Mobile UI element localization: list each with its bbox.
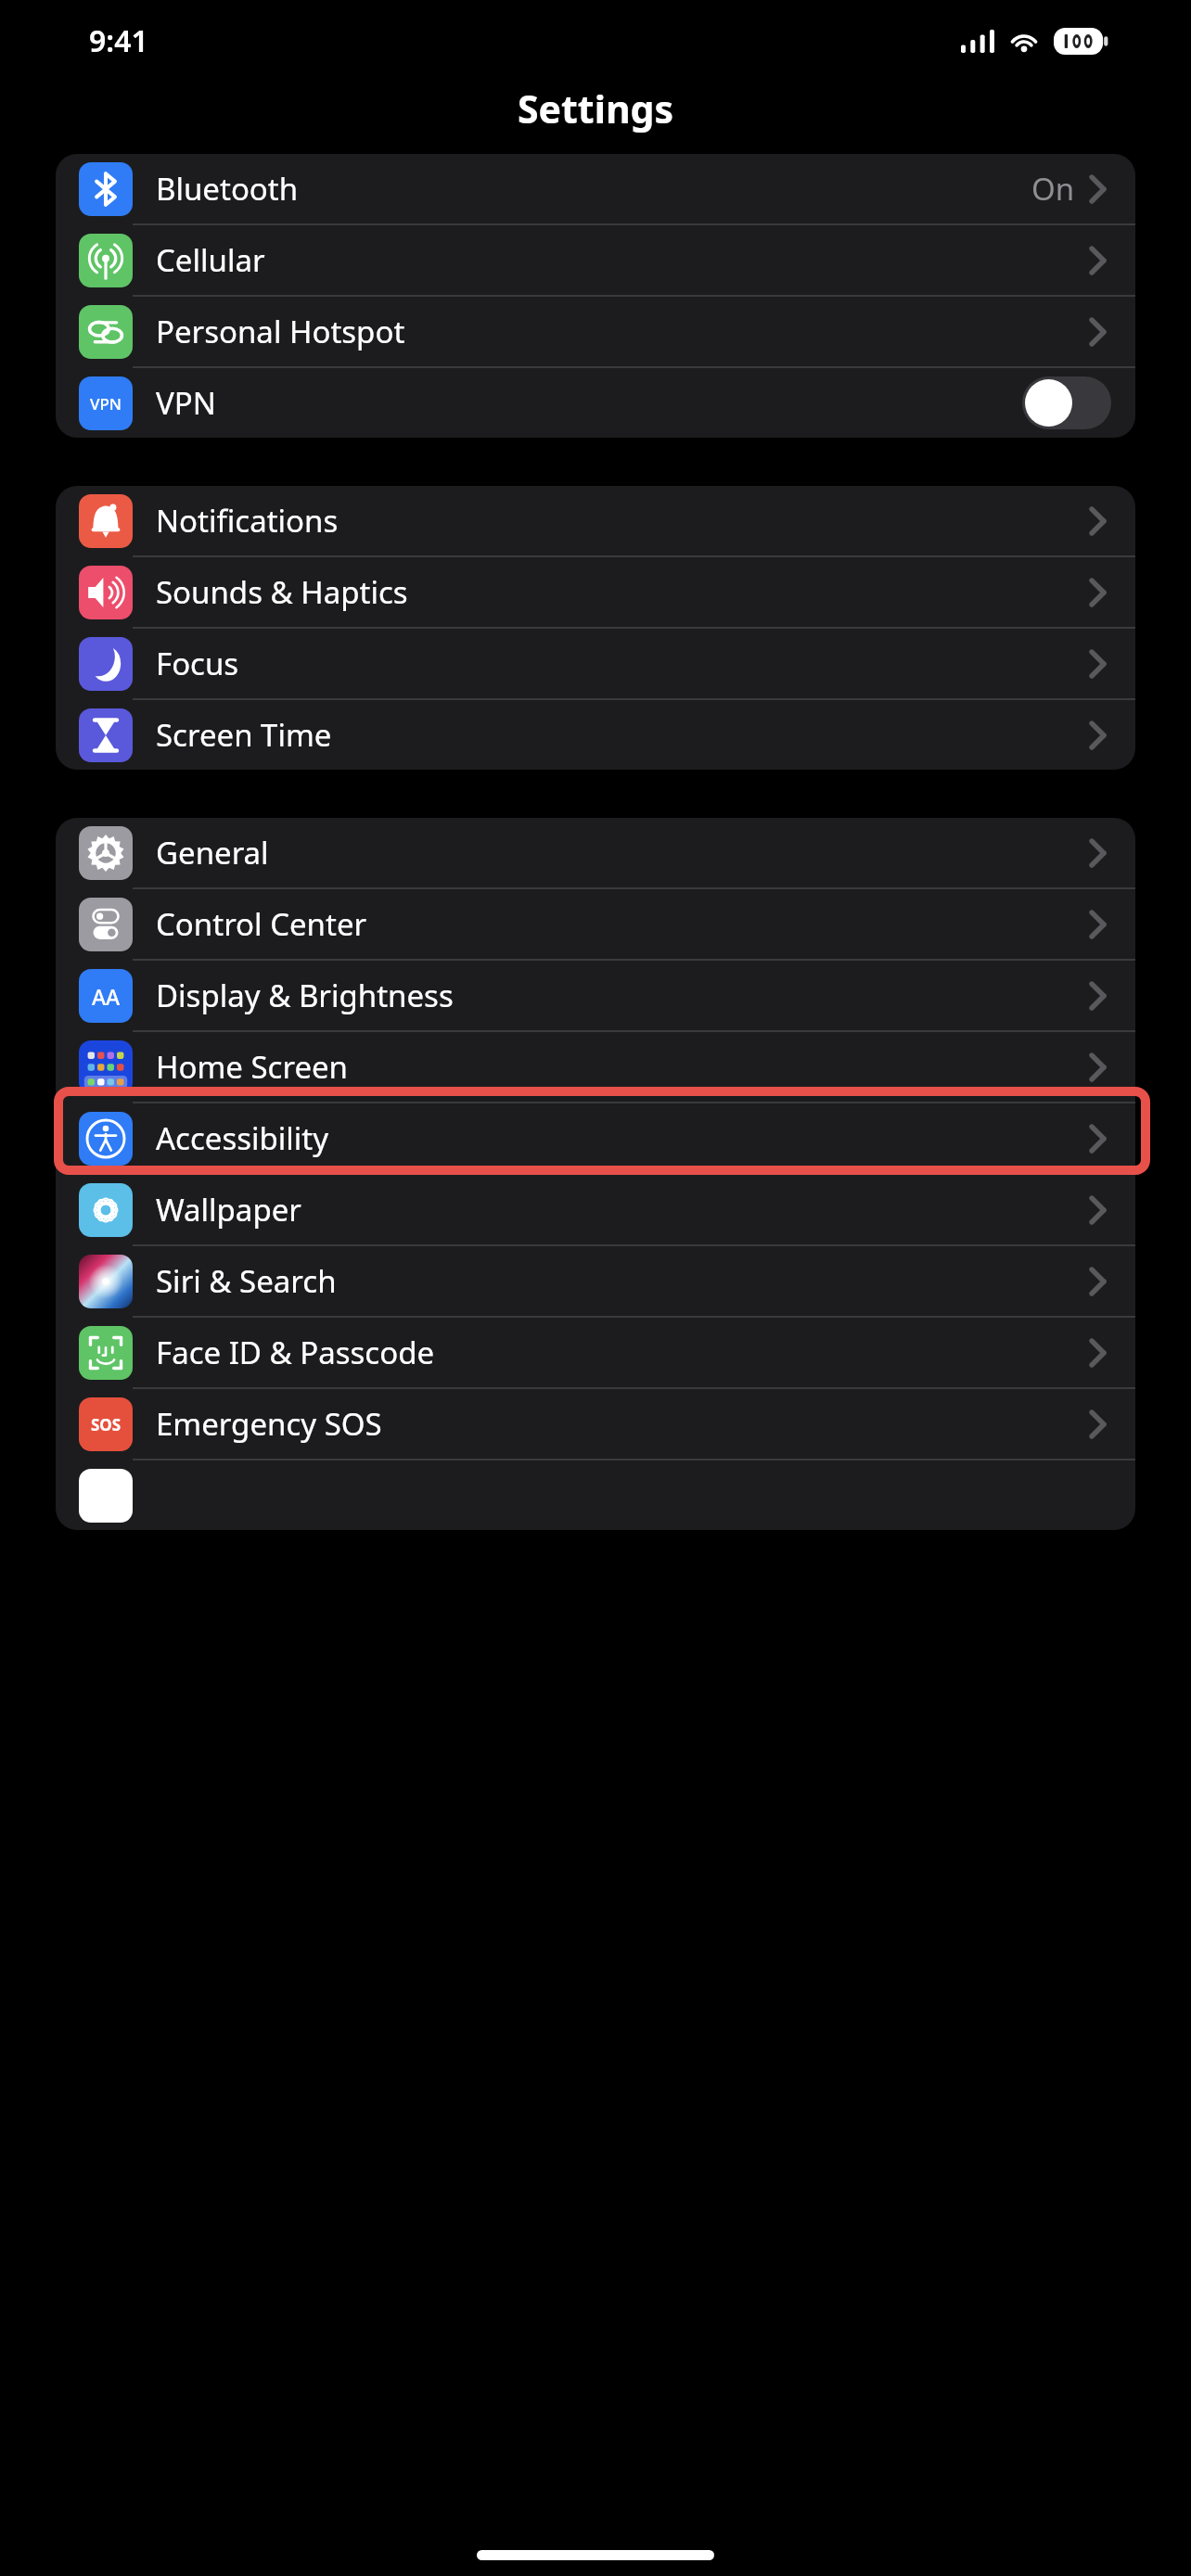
staticText: AA: [92, 982, 121, 1011]
button[interactable]: Accessibility: [56, 1103, 1135, 1173]
button[interactable]: General: [56, 818, 1135, 887]
staticText: Emergency SOS: [156, 1403, 382, 1445]
staticText: Sounds & Haptics: [156, 571, 408, 613]
staticText: VPN: [90, 393, 122, 414]
button[interactable]: AA: [56, 961, 1135, 1030]
button[interactable]: Control Center: [56, 889, 1135, 959]
staticText: Siri & Search: [156, 1260, 337, 1302]
button[interactable]: Focus: [56, 629, 1135, 698]
staticText: Settings: [518, 83, 674, 134]
staticText: Notifications: [156, 500, 339, 542]
staticText: Personal Hotspot: [156, 311, 405, 352]
button[interactable]: Personal Hotspot: [56, 297, 1135, 366]
button[interactable]: VPN toggle, off: [1022, 376, 1111, 429]
staticText: Home Screen: [156, 1046, 349, 1088]
button[interactable]: Cellular: [56, 225, 1135, 295]
button[interactable]: Sounds & Haptics: [56, 557, 1135, 627]
button[interactable]: Home Screen: [56, 1032, 1135, 1102]
button[interactable]: Notifications: [56, 486, 1135, 555]
staticText: 9:41: [89, 20, 148, 61]
staticText: Screen Time: [156, 714, 332, 756]
button[interactable]: VPN: [56, 368, 1135, 438]
staticText: Bluetooth: [156, 168, 299, 210]
button[interactable]: SOS: [56, 1389, 1135, 1459]
staticText: Face ID & Passcode: [156, 1332, 435, 1373]
button[interactable]: Face ID & Passcode: [56, 1318, 1135, 1387]
staticText: General: [156, 832, 269, 874]
staticText: On: [1031, 168, 1075, 210]
button[interactable]: Bluetooth: [56, 154, 1135, 223]
button[interactable]: Siri & Search: [56, 1246, 1135, 1316]
button[interactable]: [56, 1460, 1135, 1530]
staticText: Control Center: [156, 903, 367, 945]
staticText: VPN: [156, 382, 216, 424]
staticText: Accessibility: [156, 1117, 329, 1159]
staticText: Wallpaper: [156, 1189, 301, 1231]
button[interactable]: Screen Time: [56, 700, 1135, 770]
other: Accessibility highlighted: [54, 1087, 1150, 1175]
staticText: Cellular: [156, 239, 265, 281]
staticText: Focus: [156, 643, 239, 684]
staticText: Display & Brightness: [156, 975, 454, 1016]
staticText: SOS: [91, 1414, 122, 1435]
button[interactable]: Wallpaper: [56, 1175, 1135, 1244]
